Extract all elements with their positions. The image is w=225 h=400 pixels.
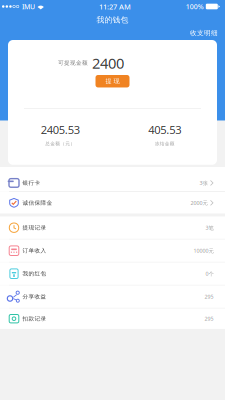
staticText: 295 xyxy=(204,315,213,322)
staticText: 我的红包 xyxy=(22,270,46,277)
staticText: 分享收益 xyxy=(22,293,46,300)
button[interactable]: 收支明细 xyxy=(183,27,225,39)
staticText: 总金额（元） xyxy=(45,141,75,147)
button[interactable]: 分享收益 xyxy=(0,285,225,308)
button[interactable]: 订单收入 xyxy=(0,239,225,262)
button[interactable]: 诚信保障金 xyxy=(0,192,225,214)
staticText: 银行卡 xyxy=(22,179,40,186)
staticText: 诚信保障金 xyxy=(22,199,52,206)
staticText: 11:27 AM xyxy=(99,1,131,12)
staticText: 3笔 xyxy=(205,224,213,231)
staticText: 提 现 xyxy=(105,77,119,85)
staticText: 3张 xyxy=(199,179,207,187)
staticText: 2000元 xyxy=(190,199,207,206)
staticText: 0个 xyxy=(205,270,213,277)
staticText: 我的钱包 xyxy=(96,15,128,25)
staticText: 405.53 xyxy=(148,122,181,137)
button[interactable]: 扣款记录 xyxy=(0,308,225,329)
staticText: 2400 xyxy=(92,53,124,73)
staticText: 100% xyxy=(186,2,204,11)
staticText: IMU xyxy=(22,2,35,11)
staticText: 收支明细 xyxy=(190,29,218,37)
button[interactable]: 银行卡 xyxy=(0,167,225,191)
button[interactable]: 提 现 xyxy=(95,75,129,87)
staticText: 提现记录 xyxy=(22,224,46,231)
button[interactable]: 我的红包 xyxy=(0,262,225,285)
button[interactable]: 提现记录 xyxy=(0,216,225,239)
staticText: 10000元 xyxy=(193,247,213,254)
staticText: 扣款记录 xyxy=(22,315,46,322)
staticText: 订单收入 xyxy=(22,247,46,254)
staticText: 冻结金额 xyxy=(155,141,175,147)
staticText: 295 xyxy=(204,293,213,300)
staticText: 可提现金额 xyxy=(58,59,88,67)
staticText: 2405.53 xyxy=(41,122,80,137)
